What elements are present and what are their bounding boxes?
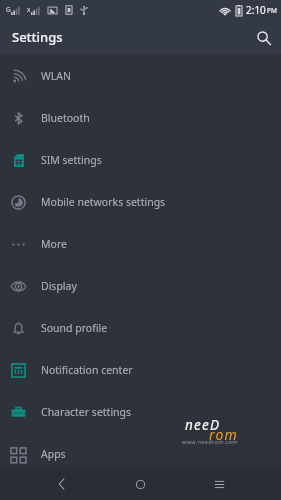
button[interactable]: WLAN — [0, 55, 281, 97]
staticText: Mobile networks settings — [41, 195, 166, 209]
button[interactable]: Display — [0, 265, 281, 307]
button[interactable]: Home — [124, 469, 156, 499]
staticText: WLAN — [41, 69, 71, 83]
staticText: 2:10 — [246, 3, 266, 17]
staticText: G — [6, 5, 11, 14]
staticText: Notification center — [41, 363, 133, 377]
button[interactable]: SIM settings — [0, 139, 281, 181]
button[interactable]: Sound profile — [0, 307, 281, 349]
staticText: neeD — [185, 416, 221, 434]
button[interactable]: Search — [246, 20, 281, 55]
button[interactable]: Character settings — [0, 391, 281, 433]
button[interactable]: Notification center — [0, 349, 281, 391]
staticText: Settings — [12, 28, 63, 46]
button[interactable]: Mobile networks settings — [0, 181, 281, 223]
button[interactable]: Back — [45, 469, 77, 499]
staticText: Apps — [41, 447, 66, 461]
staticText: www.needrom.com — [182, 438, 238, 445]
button[interactable]: Bluetooth — [0, 97, 281, 139]
staticText: SIM settings — [41, 153, 102, 167]
button[interactable]: More — [0, 223, 281, 265]
staticText: rom — [209, 425, 239, 444]
button[interactable]: Apps — [0, 433, 281, 475]
staticText: Sound profile — [41, 321, 108, 335]
staticText: More — [41, 237, 67, 251]
staticText: Display — [41, 279, 77, 293]
button[interactable]: Recent apps — [203, 469, 235, 499]
staticText: PM — [267, 6, 277, 15]
staticText: Character settings — [41, 405, 132, 419]
staticText: x — [27, 5, 31, 14]
staticText: Bluetooth — [41, 111, 90, 125]
